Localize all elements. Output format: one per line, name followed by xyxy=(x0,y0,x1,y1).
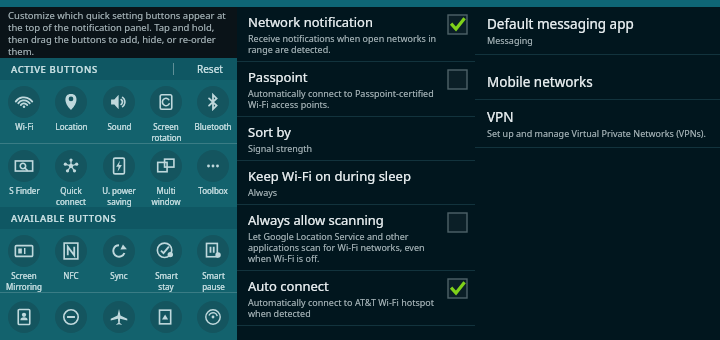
button[interactable]: Multi window xyxy=(143,150,189,207)
staticText: Screen xyxy=(11,270,37,281)
staticText: stay xyxy=(158,281,174,292)
staticText: S Finder xyxy=(9,185,40,196)
staticText: Receive notifications when open networks… xyxy=(248,32,442,55)
staticText: Auto connect xyxy=(248,277,329,295)
staticText: rotation xyxy=(151,132,182,143)
staticText: Signal strength xyxy=(248,142,313,154)
staticText: Bluetooth xyxy=(194,121,232,132)
button[interactable]: Sync xyxy=(96,235,142,281)
button[interactable]: Quick setting button xyxy=(1,301,47,333)
button[interactable]: Passpoint xyxy=(448,70,467,89)
button[interactable]: Sort by xyxy=(237,117,475,161)
staticText: Mirroring xyxy=(6,281,42,292)
staticText: Wi-Fi xyxy=(15,121,34,132)
button[interactable]: S Finder xyxy=(1,150,47,196)
button[interactable]: Quick setting button xyxy=(143,301,189,333)
button[interactable]: Screen Mirroring xyxy=(1,235,47,292)
button[interactable]: Smart pause xyxy=(190,235,236,292)
staticText: connect xyxy=(56,196,86,207)
staticText: Let Google Location Service and other ap… xyxy=(248,230,442,264)
button[interactable]: Sound xyxy=(96,86,142,132)
staticText: Sound xyxy=(107,121,132,132)
button[interactable]: Always allow scanning xyxy=(448,213,467,232)
staticText: saving xyxy=(107,196,132,207)
button[interactable]: Passpoint xyxy=(237,62,475,117)
button[interactable]: Wi-Fi xyxy=(1,86,47,132)
staticText: Mobile networks xyxy=(487,73,593,91)
staticText: Sync xyxy=(110,270,128,281)
staticText: Default messaging app xyxy=(487,15,634,33)
staticText: ACTIVE BUTTONS xyxy=(11,63,98,76)
staticText: Location xyxy=(55,121,88,132)
staticText: Smart xyxy=(155,270,178,281)
staticText: Messaging xyxy=(487,34,533,46)
button[interactable]: Quick connect xyxy=(48,150,94,207)
staticText: Automatically connect to AT&T Wi-Fi hots… xyxy=(248,296,442,319)
button[interactable]: Screen rotation xyxy=(143,86,189,143)
staticText: Toolbox xyxy=(198,185,228,196)
button[interactable]: Auto connect xyxy=(448,279,467,298)
button[interactable]: Smart stay xyxy=(143,235,189,292)
staticText: Reset xyxy=(197,62,223,76)
staticText: Set up and manage Virtual Private Networ… xyxy=(487,127,706,139)
button[interactable]: VPN xyxy=(475,100,720,148)
button[interactable]: U. power saving xyxy=(96,150,142,207)
button[interactable]: Network notification xyxy=(448,15,467,34)
staticText: window xyxy=(151,196,181,207)
staticText: pause xyxy=(202,281,225,292)
staticText: Screen xyxy=(153,121,179,132)
staticText: Sort by xyxy=(248,123,291,141)
button[interactable]: Toolbox xyxy=(190,150,236,196)
staticText: Always xyxy=(248,186,278,198)
staticText: Smart xyxy=(202,270,225,281)
staticText: Automatically connect to Passpoint-certi… xyxy=(248,87,442,110)
staticText: U. power xyxy=(102,185,136,196)
button[interactable]: Network notification xyxy=(237,7,475,62)
button[interactable]: Reset xyxy=(183,58,237,80)
staticText: Network notification xyxy=(248,13,373,31)
button[interactable]: Always allow scanning xyxy=(237,205,475,271)
staticText: Quick xyxy=(60,185,82,196)
button[interactable]: NFC xyxy=(48,235,94,281)
button[interactable]: Mobile networks xyxy=(475,55,720,100)
staticText: Passpoint xyxy=(248,68,308,86)
button[interactable]: Quick setting button xyxy=(190,301,236,333)
staticText: VPN xyxy=(487,108,514,126)
staticText: Always allow scanning xyxy=(248,211,384,229)
staticText: Customize which quick setting buttons ap… xyxy=(8,9,229,58)
staticText: Multi xyxy=(156,185,176,196)
staticText: Keep Wi-Fi on during sleep xyxy=(248,167,411,185)
button[interactable]: Quick setting button xyxy=(48,301,94,333)
button[interactable]: Quick setting button xyxy=(96,301,142,333)
button[interactable]: Default messaging app xyxy=(475,7,720,55)
staticText: NFC xyxy=(63,270,79,281)
button[interactable]: Location xyxy=(48,86,94,132)
button[interactable]: Keep Wi-Fi on during sleep xyxy=(237,161,475,205)
button[interactable]: Bluetooth xyxy=(190,86,236,132)
staticText: AVAILABLE BUTTONS xyxy=(11,212,117,225)
button[interactable]: Auto connect xyxy=(237,271,475,326)
